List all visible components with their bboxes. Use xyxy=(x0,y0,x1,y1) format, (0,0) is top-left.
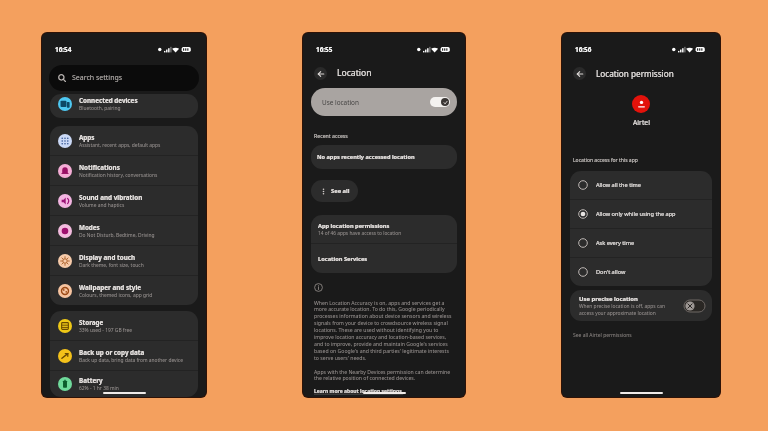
staticText: Dark theme, font size, touch xyxy=(79,262,144,269)
staticText: Storage xyxy=(79,318,104,327)
staticText: Modes xyxy=(79,223,100,232)
staticText: Back up data, bring data from another de… xyxy=(79,357,183,364)
button[interactable]: Use precise location xyxy=(570,290,712,321)
staticText: Display and touch xyxy=(79,253,136,262)
staticText: 16:54 xyxy=(55,45,72,54)
button[interactable]: Learn more about location settings. xyxy=(314,388,404,395)
button[interactable]: Ask every time xyxy=(570,229,712,257)
staticText: Location xyxy=(337,67,372,79)
staticText: No apps recently accessed location xyxy=(317,153,415,161)
staticText: Allow all the time xyxy=(596,181,641,189)
staticText: App location permissions xyxy=(318,222,390,230)
staticText: Location Services xyxy=(318,255,368,263)
button[interactable]: Allow only while using the app xyxy=(570,200,712,228)
button[interactable]: Don't allow xyxy=(570,258,712,286)
button[interactable]: Apps xyxy=(50,126,198,155)
staticText: 14 of 46 apps have access to location xyxy=(318,230,402,237)
button[interactable]: App location permissions xyxy=(311,215,457,243)
staticText: Notification history, conversations xyxy=(79,172,158,179)
staticText: Location access for this app xyxy=(573,157,638,164)
staticText: 16:56 xyxy=(575,45,592,54)
button[interactable]: Display and touch xyxy=(50,246,198,275)
staticText: When Location Accuracy is on, apps and s… xyxy=(314,299,452,362)
button[interactable]: Search settings xyxy=(49,65,199,91)
button[interactable]: See all xyxy=(311,180,358,202)
staticText: Assistant, recent apps, default apps xyxy=(79,142,161,149)
staticText: See all xyxy=(331,187,350,195)
button[interactable]: Back xyxy=(314,67,327,80)
button[interactable]: Storage xyxy=(50,311,198,340)
staticText: Apps with the Nearby Devices permission … xyxy=(314,368,452,382)
button[interactable]: Location Services xyxy=(311,244,457,273)
button[interactable]: Use location xyxy=(311,88,457,116)
staticText: Back up or copy data xyxy=(79,348,145,357)
staticText: Allow only while using the app xyxy=(596,210,676,218)
button[interactable]: Back xyxy=(573,67,586,80)
button[interactable]: Allow all the time xyxy=(570,171,712,199)
button[interactable]: Wallpaper and style xyxy=(50,276,198,305)
button[interactable]: Notifications xyxy=(50,156,198,185)
staticText: Battery xyxy=(79,376,103,385)
staticText: Don't allow xyxy=(596,268,626,276)
button[interactable]: Connected devices xyxy=(50,94,198,118)
staticText: Sound and vibration xyxy=(79,193,143,202)
staticText: Ask every time xyxy=(596,239,635,247)
staticText: Wallpaper and style xyxy=(79,283,142,292)
button[interactable]: Sound and vibration xyxy=(50,186,198,215)
staticText: Do Not Disturb, Bedtime, Driving xyxy=(79,232,155,239)
staticText: Recent access xyxy=(314,132,348,139)
staticText: 16:55 xyxy=(316,45,333,54)
staticText: Colours, themed icons, app grid xyxy=(79,292,153,299)
staticText: Bluetooth, pairing xyxy=(79,105,121,112)
staticText: Use location xyxy=(322,98,359,107)
button[interactable]: No apps recently accessed location xyxy=(311,145,457,169)
staticText: Apps xyxy=(79,133,95,142)
button[interactable]: See all Airtel permissions xyxy=(573,332,632,339)
staticText: 33% used - 197 GB free xyxy=(79,327,132,334)
staticText: Use precise location xyxy=(579,295,638,303)
staticText: When precise location is off, apps can a… xyxy=(579,303,676,316)
button[interactable]: Battery xyxy=(50,371,198,397)
staticText: Volume and haptics xyxy=(79,202,125,209)
staticText: Connected devices xyxy=(79,96,138,105)
staticText: 62% - 1 hr 38 min xyxy=(79,385,119,392)
staticText: Notifications xyxy=(79,163,120,172)
button[interactable]: Back up or copy data xyxy=(50,341,198,370)
button[interactable]: Modes xyxy=(50,216,198,245)
staticText: Airtel xyxy=(633,118,650,127)
staticText: Search settings xyxy=(72,73,123,83)
staticText: Location permission xyxy=(596,68,674,79)
